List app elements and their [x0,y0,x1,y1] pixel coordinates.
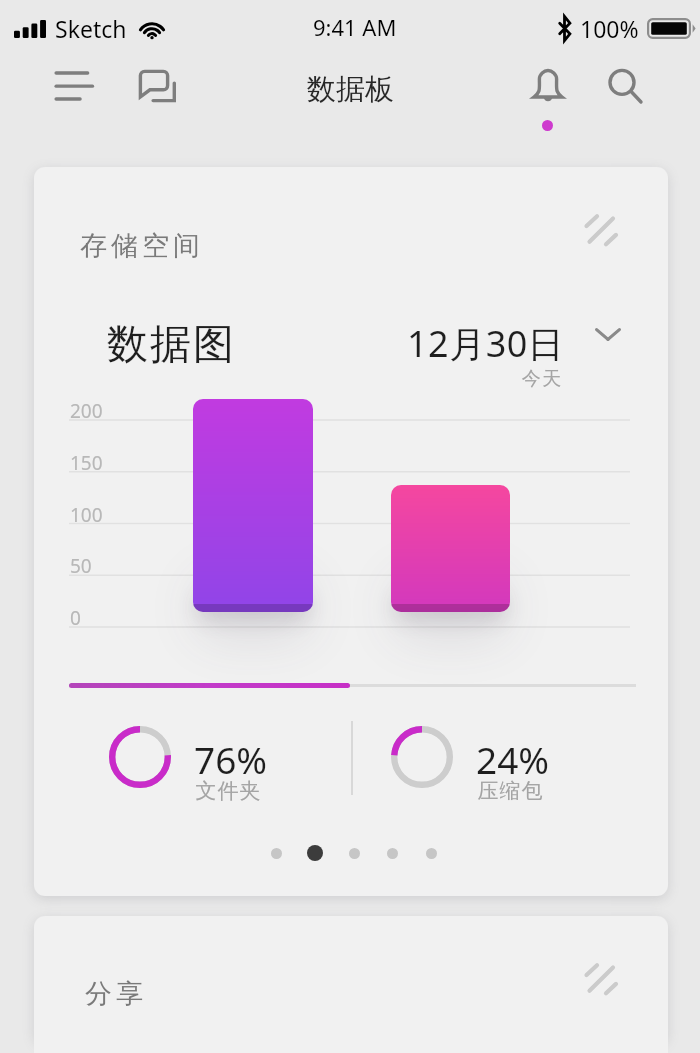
staticText: 9:41 AM [313,12,397,42]
button[interactable]: Page 5 [426,848,437,859]
staticText: Sketch [55,13,127,44]
staticText: 分享 [83,977,145,1011]
button[interactable]: Notifications [520,58,576,114]
button[interactable]: Page 1 [271,848,282,859]
staticText: 12月30日 [407,319,565,368]
staticText: 存储空间 [78,229,202,263]
staticText: 数据图 [106,319,235,371]
staticText: 100 [70,502,103,528]
button[interactable]: Search [597,58,653,114]
button[interactable]: Page 2 [307,845,323,861]
staticText: 24% [476,734,550,784]
button[interactable]: Messages [126,56,182,112]
staticText: 50 [70,553,92,579]
button[interactable]: Menu [44,60,104,112]
button[interactable]: Change date [586,312,630,356]
staticText: 今天 [521,367,562,391]
staticText: 0 [70,605,81,631]
staticText: 100% [580,13,639,44]
staticText: 压缩包 [477,778,543,804]
button[interactable]: Page 3 [349,848,360,859]
staticText: 76% [194,734,268,784]
staticText: 150 [70,450,103,476]
staticText: 数据板 [307,71,394,108]
staticText: 文件夹 [195,778,261,804]
staticText: 200 [70,398,103,424]
button[interactable]: Page 4 [387,848,398,859]
